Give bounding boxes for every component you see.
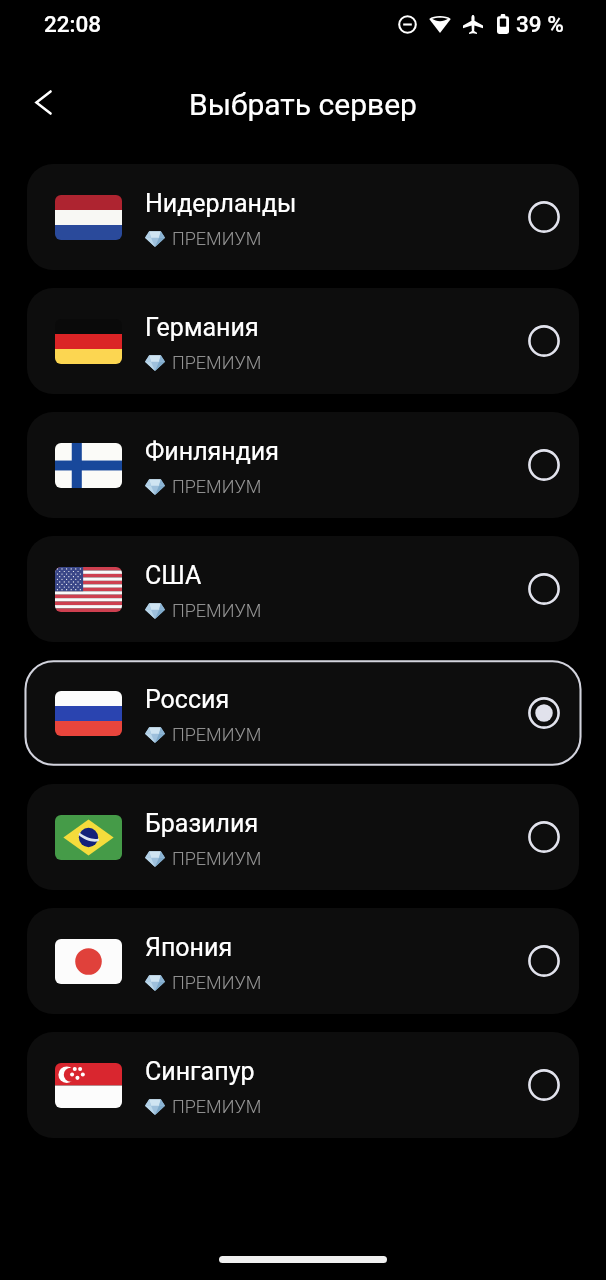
staticText: ПРЕМИУМ [172,476,262,497]
button[interactable]: Бразилия [27,784,579,890]
button[interactable]: Япония [27,908,579,1014]
staticText: ПРЕМИУМ [172,848,262,869]
button[interactable]: Сингапур [27,1032,579,1138]
button[interactable]: Back [19,78,67,126]
button[interactable]: Россия [27,660,579,766]
staticText: ПРЕМИУМ [172,228,262,249]
staticText: Россия [145,685,230,714]
staticText: Сингапур [145,1057,255,1086]
staticText: ПРЕМИУМ [172,724,262,745]
staticText: ПРЕМИУМ [172,972,262,993]
button[interactable]: Германия [27,288,579,394]
button[interactable]: США [27,536,579,642]
staticText: Германия [145,313,259,342]
button[interactable]: Нидерланды [27,164,579,270]
staticText: Финляндия [145,437,279,466]
staticText: США [145,561,202,590]
staticText: Япония [145,933,233,962]
staticText: ПРЕМИУМ [172,352,262,373]
staticText: Бразилия [145,809,259,838]
staticText: 39 % [516,11,564,37]
staticText: ПРЕМИУМ [172,1096,262,1117]
button[interactable]: Финляндия [27,412,579,518]
staticText: 22:08 [44,11,102,37]
staticText: ПРЕМИУМ [172,600,262,621]
staticText: Выбрать сервер [189,87,417,122]
staticText: Нидерланды [145,189,297,218]
